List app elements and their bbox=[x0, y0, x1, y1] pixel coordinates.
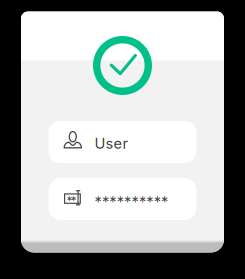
staticText: User bbox=[94, 135, 128, 152]
staticText: ********** bbox=[94, 193, 168, 211]
button[interactable]: Password field bbox=[48, 178, 196, 220]
button[interactable]: User name field bbox=[48, 121, 196, 163]
